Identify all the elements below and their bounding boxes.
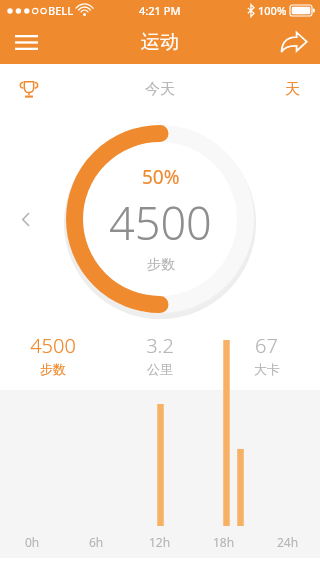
staticText: 4:21 PM	[139, 3, 181, 18]
staticText: 天	[285, 80, 300, 99]
button[interactable]: Previous day	[10, 204, 40, 234]
staticText: 4500	[109, 192, 212, 253]
staticText: BELL	[48, 3, 74, 18]
button[interactable]: Menu	[0, 20, 52, 64]
button[interactable]: Achievements	[8, 68, 50, 110]
button[interactable]: 3.2	[106, 326, 213, 383]
staticText: 运动	[141, 30, 179, 54]
staticText: 今天	[145, 80, 175, 99]
button[interactable]: 今天	[123, 71, 197, 108]
staticText: 步数	[40, 361, 66, 377]
staticText: 0h	[25, 534, 40, 550]
staticText: 50%	[142, 164, 180, 190]
button[interactable]: 天	[265, 71, 320, 108]
staticText: 4500	[30, 332, 76, 359]
staticText: 67	[255, 332, 278, 359]
staticText: 步数	[147, 256, 175, 274]
button[interactable]: 67	[213, 326, 320, 383]
button[interactable]: 4500	[0, 326, 106, 383]
staticText: 18h	[213, 534, 235, 550]
staticText: 6h	[89, 534, 104, 550]
staticText: 100%	[258, 3, 287, 18]
staticText: 大卡	[254, 361, 280, 377]
staticText: 12h	[149, 534, 171, 550]
staticText: 3.2	[146, 332, 174, 359]
staticText: 24h	[277, 534, 299, 550]
button[interactable]: Share	[268, 20, 320, 64]
staticText: 公里	[147, 361, 173, 377]
